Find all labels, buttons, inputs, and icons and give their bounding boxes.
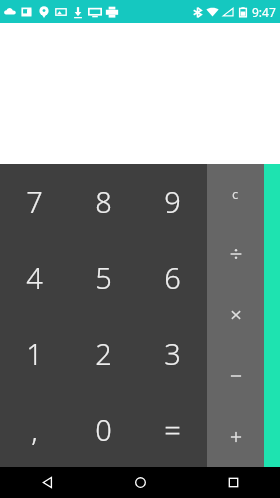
staticText: c bbox=[232, 185, 239, 203]
button[interactable]: Home bbox=[94, 467, 187, 498]
staticText: = bbox=[164, 410, 181, 449]
button[interactable]: Multiply bbox=[207, 284, 264, 345]
button[interactable]: Minus bbox=[207, 345, 264, 406]
staticText: 9:47 bbox=[252, 4, 276, 20]
staticText: 2 bbox=[95, 334, 112, 373]
button[interactable]: = bbox=[138, 391, 207, 467]
button[interactable]: 4 bbox=[0, 239, 69, 315]
staticText: 7 bbox=[26, 182, 43, 221]
staticText: 0 bbox=[95, 410, 112, 449]
button[interactable]: 2 bbox=[69, 315, 138, 391]
button[interactable]: 8 bbox=[69, 164, 138, 239]
button[interactable]: 3 bbox=[138, 315, 207, 391]
staticText: 1 bbox=[26, 334, 43, 373]
button[interactable]: 7 bbox=[0, 164, 69, 239]
staticText: 8 bbox=[95, 182, 112, 221]
staticText: 9 bbox=[164, 182, 181, 221]
button[interactable]: 9 bbox=[138, 164, 207, 239]
staticText: 4 bbox=[26, 258, 43, 297]
button[interactable]: Plus bbox=[207, 406, 264, 467]
button[interactable]: Back bbox=[0, 467, 94, 498]
button[interactable]: 6 bbox=[138, 239, 207, 315]
button[interactable]: Divide bbox=[207, 224, 264, 284]
staticText: 5 bbox=[95, 258, 112, 297]
staticText: 3 bbox=[164, 334, 181, 373]
staticText: 6 bbox=[164, 258, 181, 297]
button[interactable]: 0 bbox=[69, 391, 138, 467]
button[interactable]: 1 bbox=[0, 315, 69, 391]
button[interactable]: , bbox=[0, 391, 69, 467]
button[interactable]: Recents bbox=[187, 467, 280, 498]
button[interactable]: Clear bbox=[207, 164, 264, 224]
staticText: , bbox=[31, 410, 38, 449]
button[interactable]: 5 bbox=[69, 239, 138, 315]
